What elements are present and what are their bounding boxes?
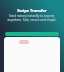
button[interactable] (5, 32, 59, 36)
button[interactable] (19, 40, 29, 44)
staticText: Send money instantly to anyone, anywhere… (0, 14, 64, 22)
staticText: Swipe Transfer (0, 8, 64, 13)
